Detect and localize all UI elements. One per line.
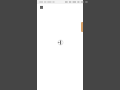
button[interactable]: Menu [39, 5, 43, 9]
button[interactable]: Open panel [81, 22, 83, 32]
other: Loading [58, 40, 63, 45]
